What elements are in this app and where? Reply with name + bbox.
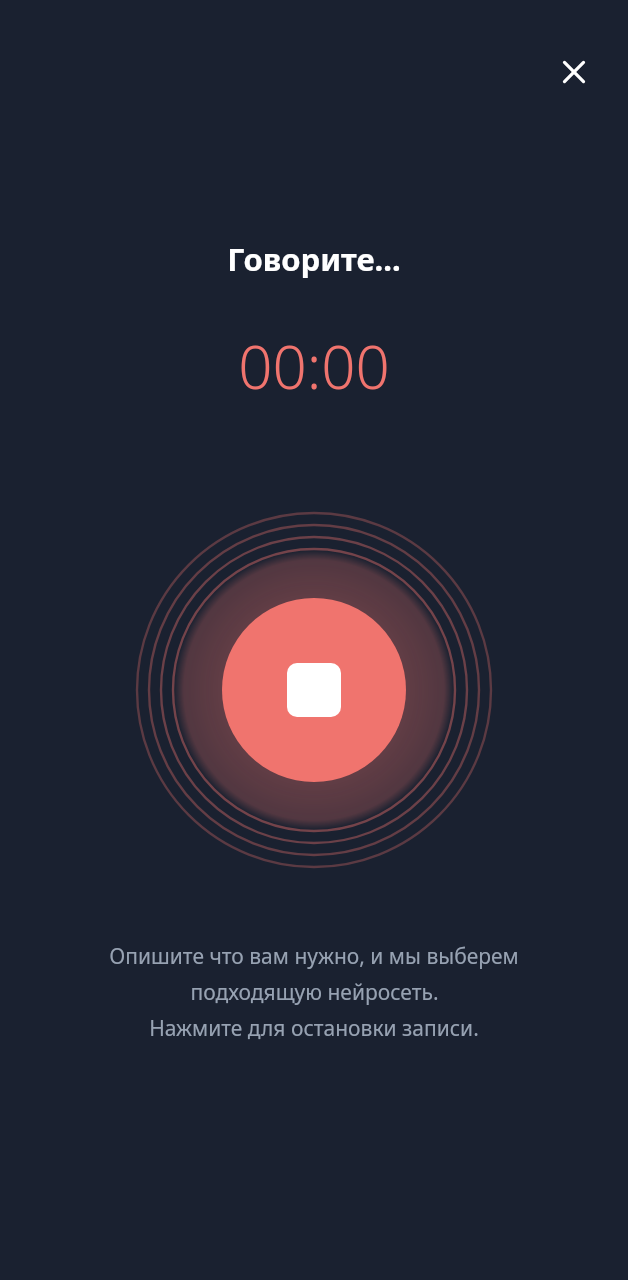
button[interactable]: Остановить запись: [222, 598, 406, 782]
button[interactable]: Закрыть: [548, 46, 600, 98]
staticText: Опишите что вам нужно, и мы выберем: [109, 942, 519, 971]
staticText: Говорите...: [0, 238, 628, 280]
staticText: Нажмите для остановки записи.: [149, 1014, 479, 1043]
staticText: 00:00: [0, 325, 628, 407]
staticText: подходящую нейросеть.: [190, 978, 439, 1007]
